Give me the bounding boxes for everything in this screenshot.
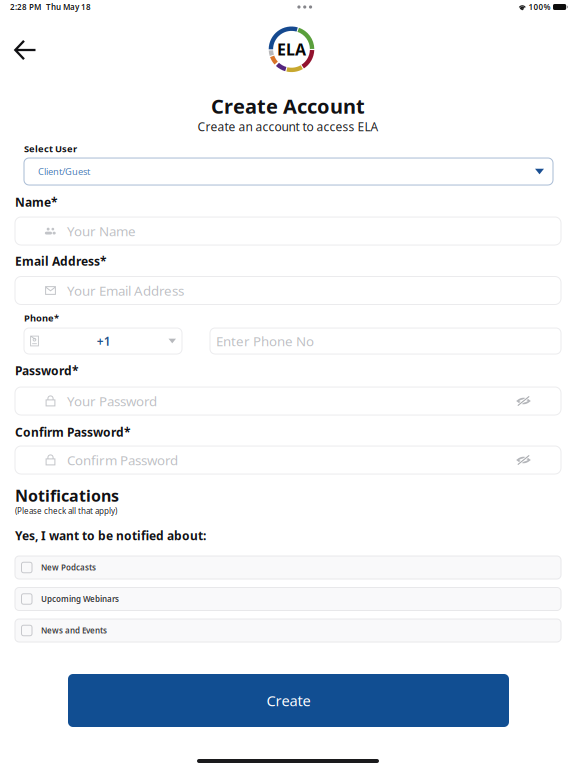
button[interactable]: News and Events [15,619,561,642]
staticText: (Please check all that apply) [15,506,117,516]
staticText: Client/Guest [38,165,90,178]
staticText: Confirm Password [67,451,178,469]
staticText: Create [266,691,310,710]
staticText: Password* [15,362,79,378]
staticText: Yes, I want to be notified about: [15,527,206,543]
staticText: News and Events [41,625,107,636]
button[interactable]: Client/Guest [24,158,553,185]
staticText: Your Password [67,392,157,410]
staticText: Name* [15,194,58,210]
button[interactable]: Your Email Address [15,276,561,304]
staticText: Upcoming Webinars [41,594,119,604]
staticText: Your Email Address [67,282,184,299]
staticText: 100% [528,2,550,12]
button[interactable]: Back [4,31,46,69]
staticText: Create Account [211,93,365,119]
staticText: Thu May 18 [46,2,91,12]
staticText: Phone* [24,312,59,324]
staticText: +1 [97,333,111,349]
staticText: Enter Phone No [216,332,314,350]
button[interactable]: +1 [24,328,182,354]
staticText: New Podcasts [41,562,96,573]
button[interactable]: New Podcasts [15,556,561,579]
staticText: Confirm Password* [15,424,131,440]
staticText: Create an account to access ELA [197,118,378,134]
staticText: Email Address* [15,253,107,269]
staticText: Select User [24,142,77,155]
staticText: 2:28 PM [10,2,41,12]
button[interactable]: Create [68,674,509,727]
staticText: Your Name [67,222,136,240]
button[interactable]: Enter Phone No [210,328,561,354]
staticText: Notifications [15,485,119,506]
button[interactable]: Your Name [15,217,561,245]
button[interactable]: Upcoming Webinars [15,587,561,610]
button[interactable]: Confirm Password [15,446,561,474]
button[interactable]: Your Password [15,387,561,415]
staticText: ELA [277,39,306,60]
